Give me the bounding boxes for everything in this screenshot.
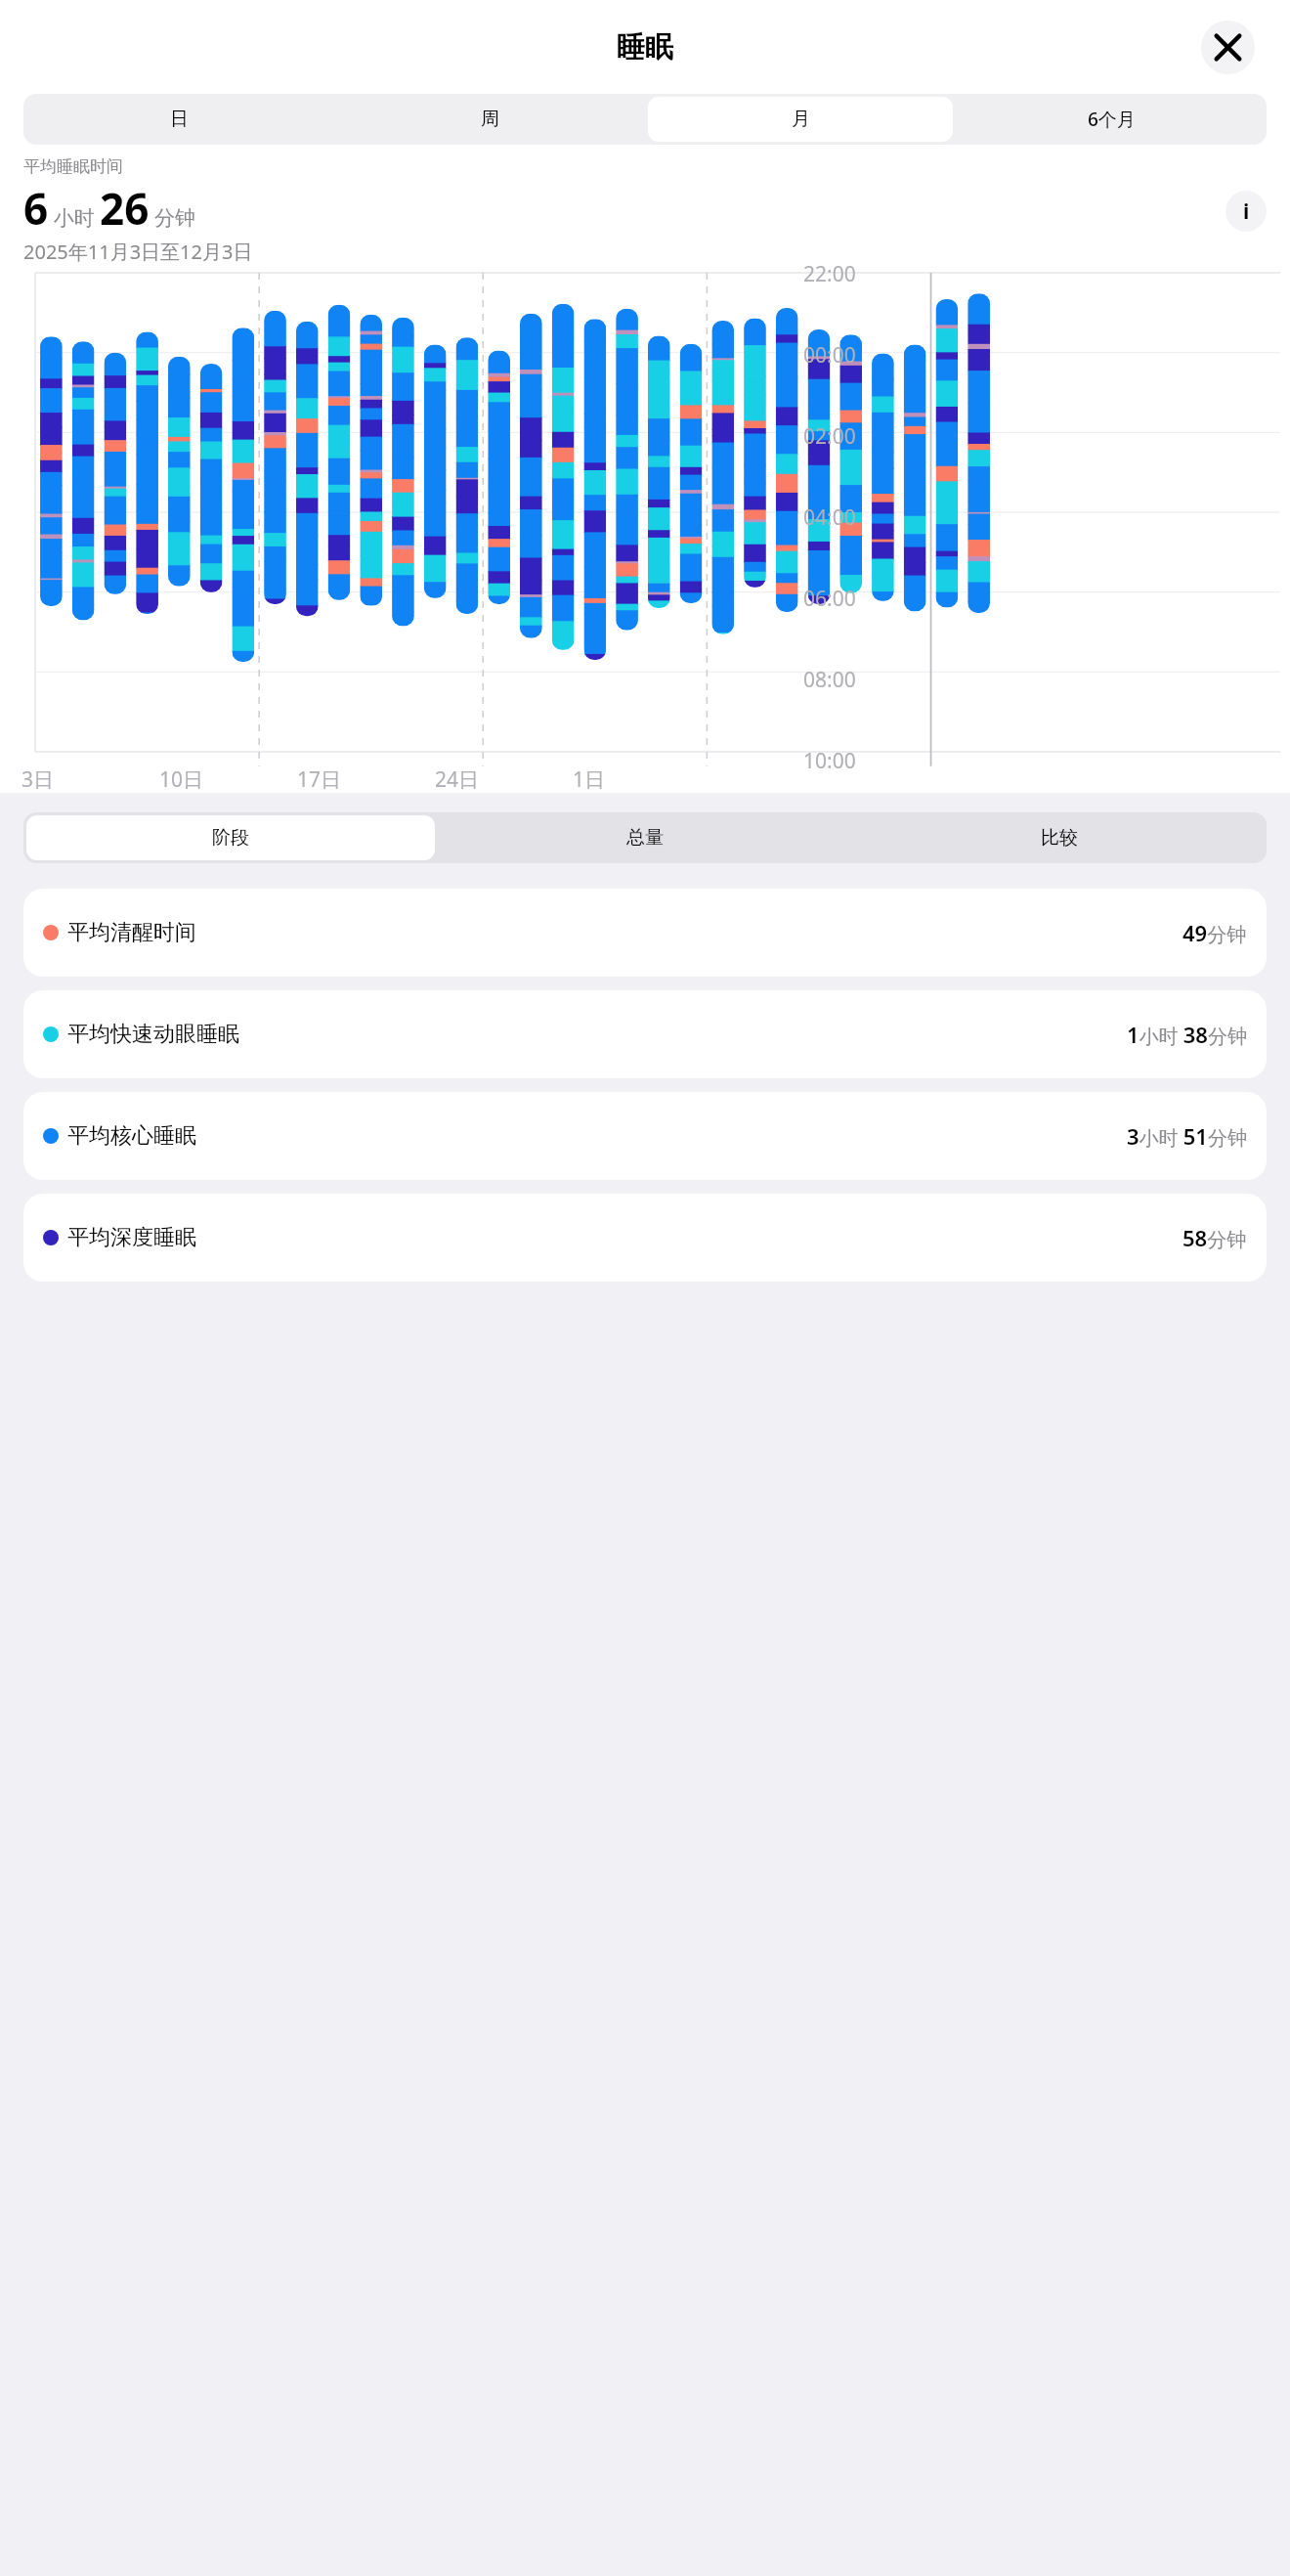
button[interactable]: 日 xyxy=(26,97,331,142)
staticText: 04:00 xyxy=(803,503,856,532)
staticText: 06:00 xyxy=(803,585,856,613)
staticText: 睡眠 xyxy=(617,29,673,65)
staticText: 平均核心睡眠 xyxy=(67,1122,196,1150)
button[interactable]: 比较 xyxy=(855,815,1264,860)
staticText: 24日 xyxy=(435,765,480,794)
staticText: 3小时 51分钟 xyxy=(1127,1121,1247,1151)
staticText: 6 小时 26 分钟 xyxy=(23,179,195,238)
staticText: 月 xyxy=(792,108,810,131)
button[interactable]: 平均核心睡眠 xyxy=(23,1092,1267,1180)
staticText: 6个月 xyxy=(1088,107,1136,132)
button[interactable]: 平均快速动眼睡眠 xyxy=(23,990,1267,1078)
staticText: 00:00 xyxy=(803,341,856,370)
staticText: 阶段 xyxy=(212,826,249,850)
button[interactable]: 关闭 xyxy=(1201,21,1255,74)
button[interactable]: 月 xyxy=(648,97,953,142)
staticText: 总量 xyxy=(626,826,664,850)
staticText: 2025年11月3日至12月3日 xyxy=(23,239,253,265)
staticText: 08:00 xyxy=(803,666,856,694)
staticText: i xyxy=(1243,197,1250,226)
staticText: 10:00 xyxy=(803,747,856,775)
staticText: 58分钟 xyxy=(1182,1223,1247,1252)
staticText: 平均清醒时间 xyxy=(67,919,196,946)
staticText: 02:00 xyxy=(803,422,856,451)
staticText: 1日 xyxy=(573,765,606,794)
staticText: 49分钟 xyxy=(1182,918,1247,947)
staticText: 22:00 xyxy=(803,260,856,288)
staticText: 10日 xyxy=(159,765,204,794)
button[interactable]: 6个月 xyxy=(959,97,1264,142)
button[interactable]: 信息 xyxy=(1225,191,1267,232)
button[interactable]: 总量 xyxy=(441,815,849,860)
staticText: 比较 xyxy=(1041,826,1078,850)
staticText: 3日 xyxy=(21,765,55,794)
staticText: 平均睡眠时间 xyxy=(23,156,123,177)
button[interactable]: 周 xyxy=(337,97,642,142)
staticText: 平均快速动眼睡眠 xyxy=(67,1021,239,1048)
button[interactable]: 平均深度睡眠 xyxy=(23,1194,1267,1282)
staticText: 平均深度睡眠 xyxy=(67,1224,196,1251)
staticText: 日 xyxy=(170,108,189,131)
button[interactable]: 平均清醒时间 xyxy=(23,889,1267,977)
staticText: 1小时 38分钟 xyxy=(1127,1020,1247,1049)
button[interactable]: 阶段 xyxy=(26,815,435,860)
staticText: 周 xyxy=(481,108,499,131)
staticText: 17日 xyxy=(297,765,342,794)
